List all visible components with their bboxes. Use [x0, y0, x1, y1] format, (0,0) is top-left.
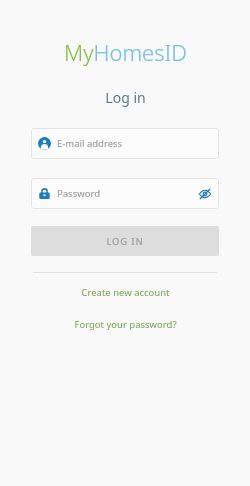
staticText: E-mail address [57, 137, 123, 150]
button[interactable]: LOG IN [31, 226, 219, 256]
staticText: Create new account [81, 286, 170, 299]
button[interactable]: Forgot your password? [0, 315, 250, 334]
other: Password [38, 187, 51, 200]
staticText: LOG IN [106, 235, 144, 248]
staticText: Forgot your password? [74, 318, 177, 331]
button[interactable]: Show password [197, 186, 213, 202]
button[interactable]: Account [31, 128, 219, 159]
button[interactable]: Password [31, 178, 219, 209]
other: Account [38, 137, 51, 150]
button[interactable]: Create new account [0, 283, 250, 302]
staticText: Log in [105, 88, 146, 107]
staticText: Password [57, 187, 100, 200]
staticText: MyHomesID [64, 37, 187, 67]
